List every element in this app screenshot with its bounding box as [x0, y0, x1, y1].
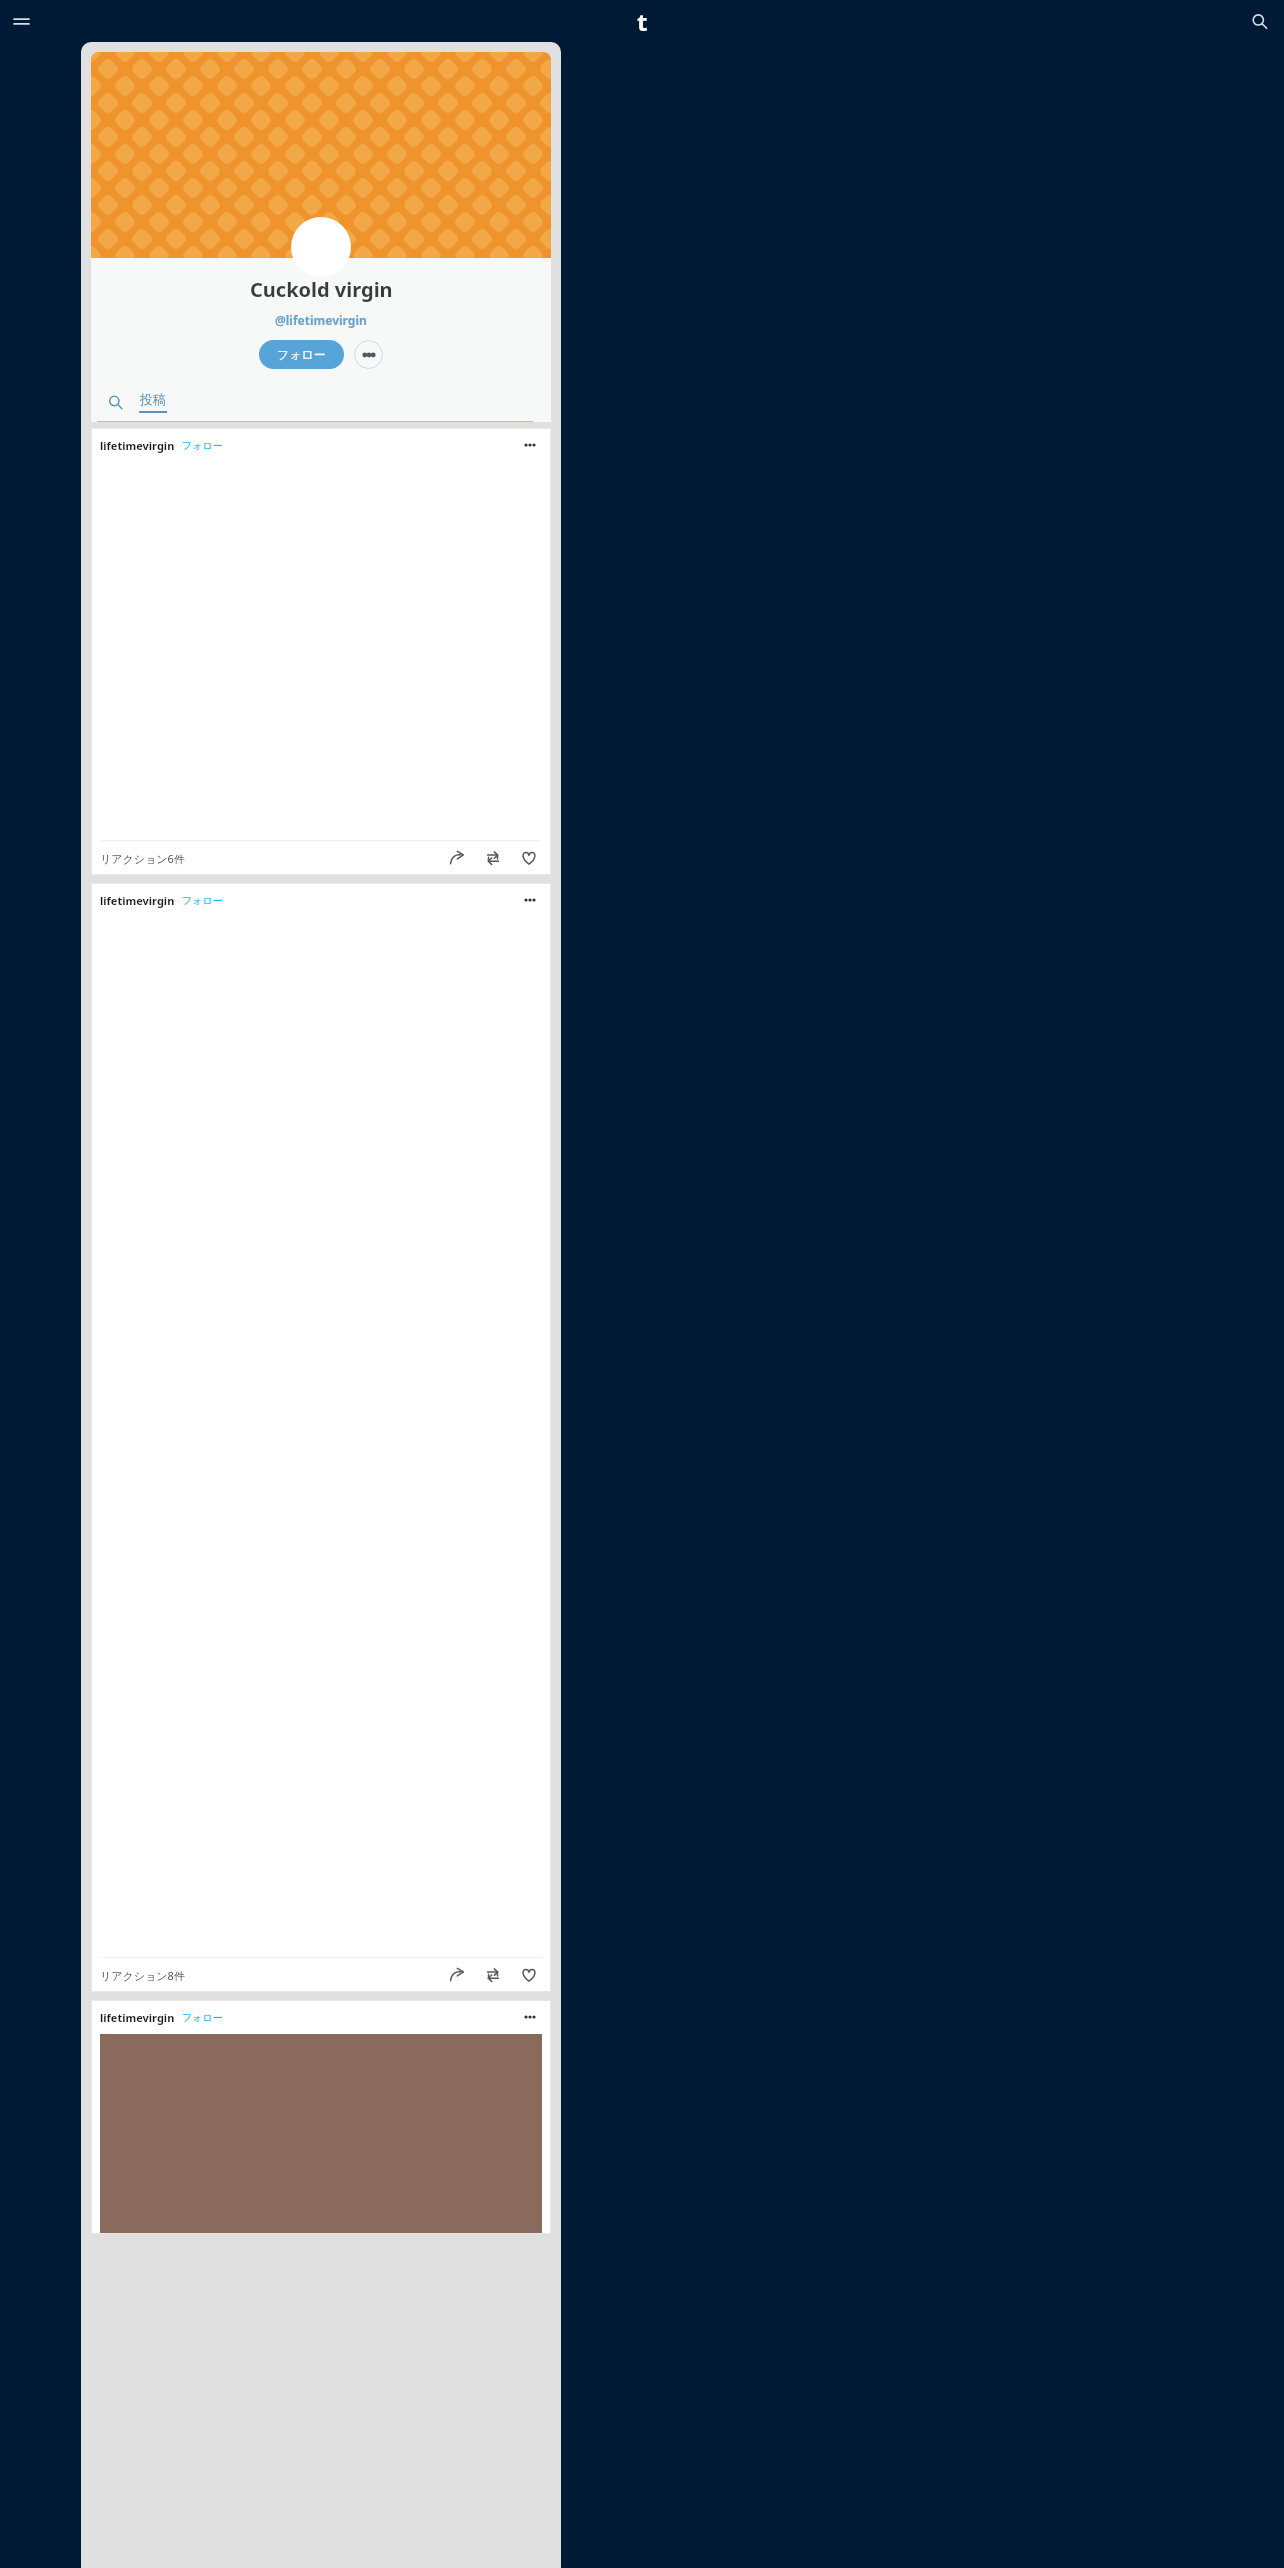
button[interactable]: リアクション6件	[100, 851, 185, 866]
staticText: 投稿	[140, 391, 166, 407]
button[interactable]: フォロー	[182, 2011, 223, 2024]
button[interactable]: 投稿	[139, 391, 167, 413]
staticText: リアクション8件	[100, 1968, 185, 1983]
staticText: lifetimevirgin	[100, 2010, 175, 2025]
staticText: Cuckold virgin	[250, 276, 393, 303]
button[interactable]: Post options	[518, 2005, 542, 2029]
button[interactable]: Like	[516, 1962, 542, 1988]
button[interactable]: @lifetimevirgin	[275, 312, 367, 328]
button[interactable]: Reblog	[480, 1962, 506, 1988]
staticText: @lifetimevirgin	[275, 312, 367, 328]
staticText: lifetimevirgin	[100, 438, 175, 453]
button[interactable]: lifetimevirgin	[91, 883, 551, 917]
button[interactable]: Post options	[518, 433, 542, 457]
button[interactable]: Menu	[4, 4, 38, 38]
button[interactable]: フォロー	[182, 439, 223, 452]
staticText: リアクション6件	[100, 851, 185, 866]
button[interactable]: フォロー	[182, 894, 223, 907]
button[interactable]: フォロー	[259, 340, 344, 369]
button[interactable]: Post options	[518, 888, 542, 912]
button[interactable]: Share	[444, 1962, 470, 1988]
button[interactable]: Search	[1242, 4, 1276, 38]
button[interactable]: lifetimevirgin	[91, 428, 551, 462]
button[interactable]: Search blog	[101, 388, 129, 416]
button[interactable]: Share	[444, 845, 470, 871]
button[interactable]: リアクション8件	[100, 1968, 185, 1983]
staticText: t	[637, 5, 648, 38]
button[interactable]: Like	[516, 845, 542, 871]
button[interactable]: Avatar	[291, 217, 351, 277]
staticText: lifetimevirgin	[100, 893, 175, 908]
staticText: フォロー	[182, 439, 223, 452]
button[interactable]: More options	[354, 340, 383, 369]
staticText: フォロー	[277, 347, 326, 362]
button[interactable]: Reblog	[480, 845, 506, 871]
staticText: フォロー	[182, 894, 223, 907]
button[interactable]: lifetimevirgin	[91, 2000, 551, 2034]
staticText: フォロー	[182, 2011, 223, 2024]
